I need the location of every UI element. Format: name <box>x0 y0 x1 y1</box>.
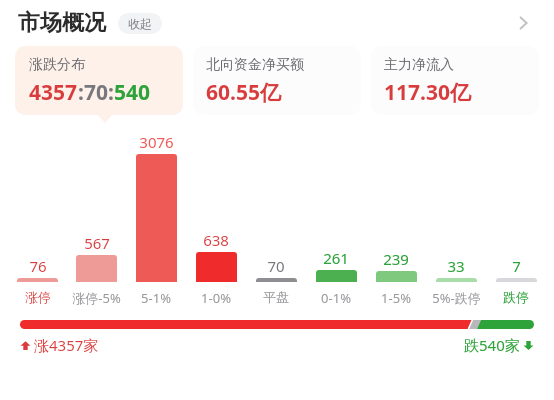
staticText: 0-1% <box>321 289 351 307</box>
staticText: 261 <box>323 248 349 268</box>
staticText: 5%-跌停 <box>432 289 481 307</box>
staticText: 跌540家 <box>464 335 520 355</box>
staticText: 33 <box>447 256 465 276</box>
staticText: 收起 <box>128 16 152 31</box>
staticText: 涨停-5% <box>72 289 121 307</box>
button[interactable]: 主力净流入 <box>371 46 539 115</box>
staticText: 7 <box>512 256 521 276</box>
staticText: 567 <box>84 233 110 253</box>
button[interactable]: 收起 <box>118 13 162 34</box>
staticText: 540 <box>114 78 151 107</box>
staticText: 638 <box>203 230 229 250</box>
staticText: 涨停 <box>25 289 51 305</box>
staticText: 70 <box>267 256 285 276</box>
staticText: 1-0% <box>201 289 231 307</box>
staticText: 跌停 <box>503 289 529 305</box>
staticText: 1-5% <box>381 289 411 307</box>
staticText: 涨4357家 <box>34 335 99 355</box>
staticText: 5-1% <box>141 289 171 307</box>
button[interactable]: 涨跌分布 <box>15 46 183 115</box>
staticText: :70: <box>78 78 114 107</box>
staticText: 主力净流入 <box>384 56 454 74</box>
staticText: 平盘 <box>263 289 289 305</box>
staticText: 60.55亿 <box>206 78 281 107</box>
staticText: 239 <box>383 249 409 269</box>
button[interactable]: 北向资金净买额 <box>193 46 361 115</box>
staticText: 76 <box>29 256 47 276</box>
staticText: 117.30亿 <box>384 78 471 107</box>
staticText: 北向资金净买额 <box>206 56 304 74</box>
staticText: 市场概况 <box>18 9 106 37</box>
staticText: 3076 <box>139 132 174 152</box>
staticText: 4357 <box>29 78 78 107</box>
button[interactable]: More <box>506 6 540 40</box>
staticText: 涨跌分布 <box>29 56 85 74</box>
